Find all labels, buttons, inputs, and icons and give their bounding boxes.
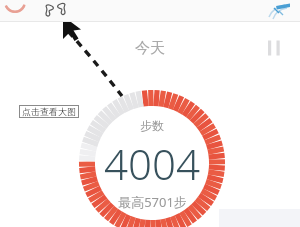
staticText: 今天	[135, 39, 165, 58]
button[interactable]: Pause	[264, 38, 284, 58]
staticText: 4004	[104, 135, 200, 192]
button[interactable]: Steps	[42, 1, 68, 21]
button[interactable]: 点击查看大图	[19, 105, 79, 118]
button[interactable]: Running shoe	[266, 1, 292, 21]
staticText: 点击查看大图	[22, 106, 76, 117]
button[interactable]: 今天	[129, 37, 171, 60]
other: Progress ring	[2, 0, 28, 22]
staticText: 步数	[140, 118, 164, 133]
staticText: 最高5701步	[118, 193, 187, 211]
